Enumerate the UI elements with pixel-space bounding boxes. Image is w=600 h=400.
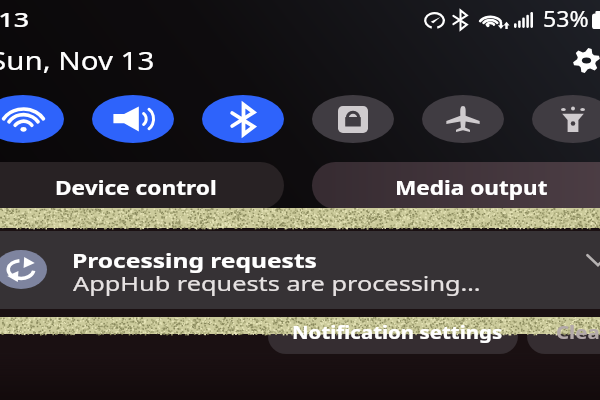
staticText: :13 (0, 7, 29, 33)
button[interactable] (268, 318, 518, 354)
button[interactable]: Airplane mode (422, 95, 504, 143)
staticText: Clear (556, 320, 600, 345)
staticText: Device control (55, 174, 217, 201)
button[interactable]: Wi-Fi (0, 95, 64, 143)
button[interactable]: Bluetooth (202, 95, 284, 143)
staticText: Processing requests (72, 247, 318, 274)
button[interactable] (0, 318, 600, 354)
button[interactable]: Flashlight (532, 95, 600, 143)
staticText: 53% (543, 5, 589, 34)
staticText: Media output (395, 174, 548, 201)
button[interactable]: Settings (566, 40, 600, 80)
staticText: Notification settings (292, 320, 503, 345)
staticText: AppHub requests are processing… (73, 270, 482, 297)
button[interactable] (0, 162, 600, 209)
staticText: Sun, Nov 13 (0, 43, 155, 77)
button[interactable]: Work profile (312, 95, 394, 143)
button[interactable] (0, 231, 600, 309)
button[interactable] (0, 162, 600, 209)
button[interactable]: Sound (92, 95, 174, 143)
